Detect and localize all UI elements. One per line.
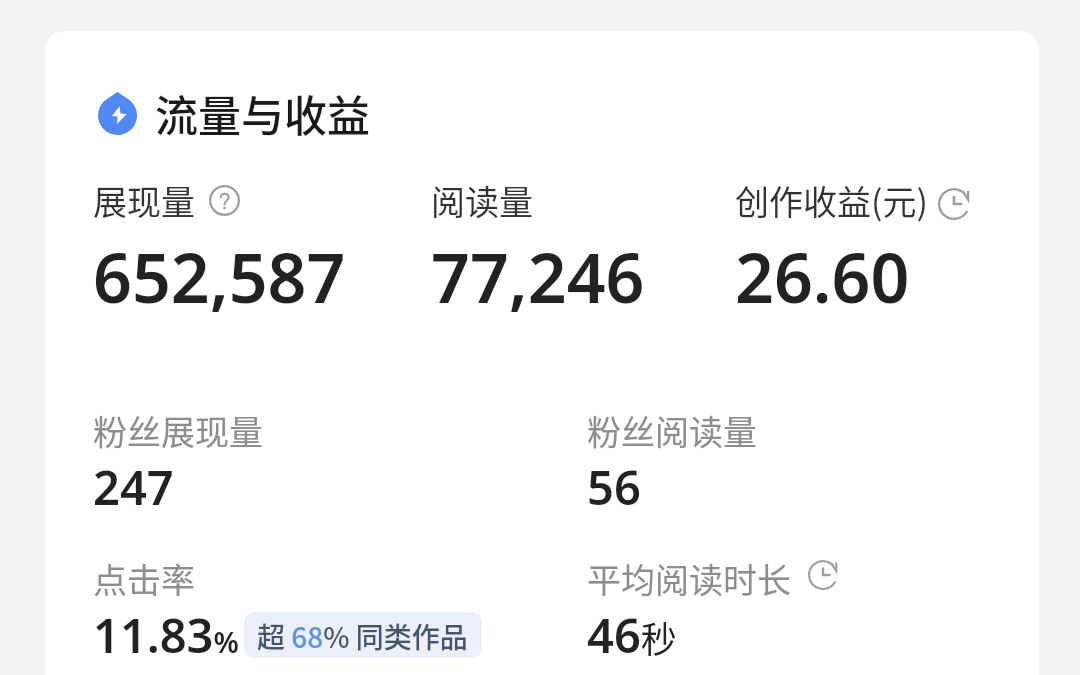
staticText: 创作收益(元) bbox=[735, 176, 928, 225]
button[interactable]: 平均阅读时长 bbox=[587, 554, 838, 667]
staticText: 652,587 bbox=[93, 230, 346, 323]
button[interactable]: 展现量 bbox=[93, 176, 431, 323]
staticText: 247 bbox=[93, 455, 174, 519]
other: 流量与收益 bbox=[98, 92, 137, 135]
staticText: 超 68% 同类作品 bbox=[257, 616, 468, 657]
staticText: 展现量 bbox=[93, 176, 195, 225]
staticText: 77,246 bbox=[431, 230, 645, 323]
staticText: 11.83% bbox=[93, 603, 239, 667]
staticText: 26.60 bbox=[735, 230, 910, 323]
button[interactable]: 点击率 bbox=[93, 554, 588, 667]
staticText: 粉丝展现量 bbox=[93, 406, 263, 455]
staticText: 点击率 bbox=[93, 554, 195, 603]
staticText: 阅读量 bbox=[431, 176, 533, 225]
staticText: 流量与收益 bbox=[155, 82, 370, 144]
button[interactable]: 粉丝展现量 bbox=[93, 406, 588, 519]
other: 历史数据 bbox=[808, 560, 838, 590]
staticText: 粉丝阅读量 bbox=[587, 406, 757, 455]
other: 帮助说明 bbox=[209, 185, 240, 216]
staticText: 56 bbox=[587, 455, 641, 519]
button[interactable]: 粉丝阅读量 bbox=[587, 406, 987, 519]
button[interactable]: 流量与收益 bbox=[98, 82, 370, 144]
button[interactable]: 超 68% 同类作品 bbox=[244, 612, 482, 658]
other: 历史数据 bbox=[938, 188, 970, 220]
staticText: 46秒 bbox=[587, 603, 677, 667]
button[interactable]: 创作收益(元) bbox=[735, 176, 1015, 323]
button[interactable]: 阅读量 bbox=[431, 176, 735, 323]
staticText: 平均阅读时长 bbox=[587, 554, 791, 603]
